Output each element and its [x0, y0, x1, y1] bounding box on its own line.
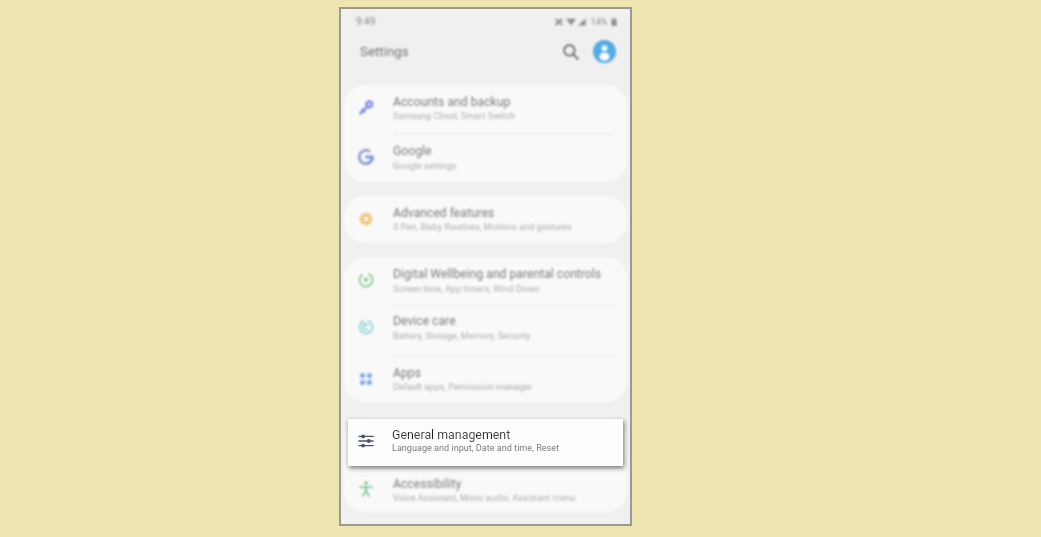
- button[interactable]: [344, 84, 627, 132]
- button[interactable]: [344, 134, 627, 182]
- staticText: Screen time, App timers, Wind Down: [393, 284, 540, 295]
- button[interactable]: Search: [557, 38, 585, 66]
- staticText: Battery, Storage, Memory, Security: [393, 331, 531, 342]
- button[interactable]: [344, 304, 627, 352]
- button[interactable]: [344, 355, 627, 403]
- staticText: S Pen, Bixby Routines, Motions and gestu…: [393, 222, 572, 233]
- staticText: Samsung Cloud, Smart Switch: [393, 111, 515, 122]
- button[interactable]: Account: [593, 40, 616, 63]
- staticText: Google: [393, 144, 432, 158]
- staticText: Accounts and backup: [393, 95, 511, 109]
- staticText: 14%: [591, 17, 608, 28]
- staticText: Language and input, Date and time, Reset: [392, 443, 560, 454]
- button[interactable]: [344, 195, 627, 243]
- staticText: Settings: [360, 44, 409, 60]
- staticText: Apps: [393, 366, 421, 380]
- button[interactable]: [344, 257, 627, 305]
- button[interactable]: [344, 417, 627, 465]
- staticText: 9:49: [356, 16, 376, 28]
- button[interactable]: [344, 466, 627, 514]
- staticText: Voice Assistant, Mono audio, Assistant m…: [393, 493, 576, 504]
- button[interactable]: General management: [348, 419, 623, 466]
- staticText: General management: [392, 427, 511, 442]
- staticText: Default apps, Permission manager: [393, 382, 532, 393]
- staticText: Advanced features: [393, 206, 495, 220]
- staticText: Language and input, Date and time, Reset: [393, 444, 561, 455]
- staticText: Digital Wellbeing and parental controls: [393, 267, 602, 281]
- staticText: Accessibility: [393, 477, 462, 491]
- staticText: Device care: [393, 314, 456, 328]
- staticText: Google settings: [393, 161, 457, 172]
- staticText: General management: [393, 427, 510, 441]
